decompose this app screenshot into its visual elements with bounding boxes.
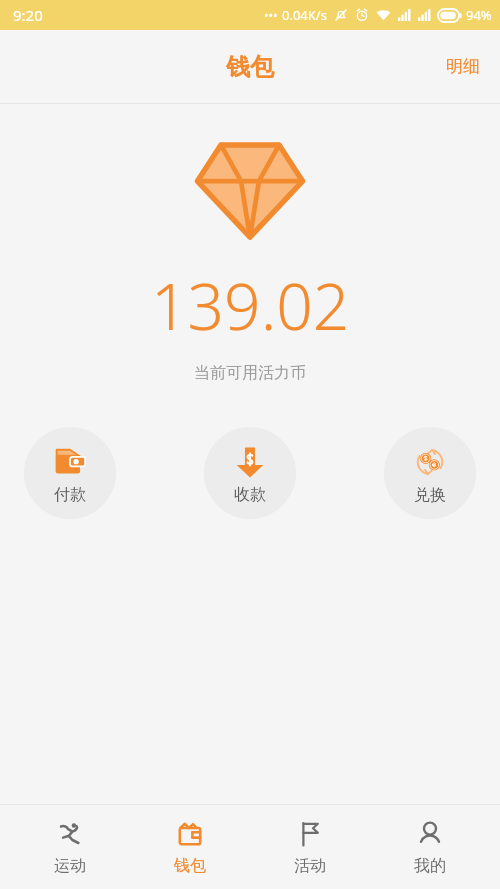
button[interactable]: 活动: [260, 805, 360, 889]
button[interactable]: 明细: [426, 42, 500, 91]
staticText: 兑换: [414, 485, 446, 505]
staticText: 活动: [294, 856, 326, 876]
staticText: 94%: [466, 6, 492, 24]
staticText: 钱包: [174, 856, 206, 876]
staticText: 钱包: [226, 52, 274, 82]
staticText: 明细: [446, 56, 480, 77]
button[interactable]: 钱包: [140, 805, 240, 889]
staticText: 收款: [234, 485, 266, 505]
staticText: 付款: [54, 485, 86, 505]
button[interactable]: 运动: [20, 805, 120, 889]
staticText: 当前可用活力币: [194, 363, 306, 383]
staticText: 9:20: [13, 5, 43, 25]
button[interactable]: Exchange: [384, 427, 476, 519]
button[interactable]: Receive: [204, 427, 296, 519]
staticText: 139.02: [151, 262, 350, 349]
staticText: •••: [264, 7, 278, 23]
staticText: 运动: [54, 856, 86, 876]
button[interactable]: Pay: [24, 427, 116, 519]
button[interactable]: 我的: [380, 805, 480, 889]
staticText: 我的: [414, 856, 446, 876]
staticText: 0.04K/s: [282, 6, 327, 24]
